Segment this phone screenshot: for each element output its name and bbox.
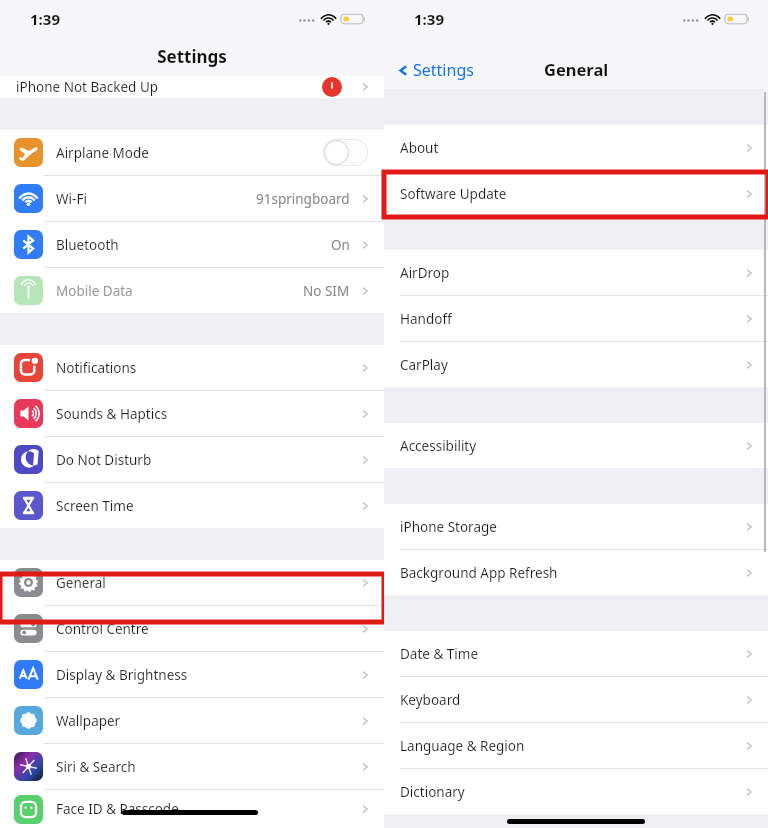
staticText: Wi-Fi (56, 190, 87, 208)
staticText: Siri & Search (56, 758, 136, 776)
staticText: Settings (157, 45, 227, 68)
staticText: AirDrop (400, 264, 450, 282)
staticText: Sounds & Haptics (56, 405, 168, 423)
button[interactable]: iPhone Storage (384, 504, 768, 549)
button[interactable]: Siri & Search (0, 744, 384, 789)
staticText: Face ID & Passcode (56, 800, 179, 818)
button[interactable]: Display & Brightness (0, 652, 384, 697)
staticText: Handoff (400, 310, 452, 328)
button[interactable]: CarPlay (384, 342, 768, 387)
staticText: Software Update (400, 185, 507, 203)
staticText: Mobile Data (56, 282, 133, 300)
staticText: About (400, 139, 439, 157)
staticText: Display & Brightness (56, 666, 188, 684)
button[interactable]: Airplane Mode (0, 130, 384, 175)
button[interactable]: Notifications (0, 345, 384, 390)
staticText: Keyboard (400, 691, 461, 709)
button[interactable]: Language & Region (384, 723, 768, 768)
button[interactable]: Background App Refresh (384, 550, 768, 595)
staticText: Bluetooth (56, 236, 119, 254)
button[interactable]: AirDrop (384, 250, 768, 295)
button[interactable]: About (384, 125, 768, 170)
button[interactable]: Wi-Fi (0, 176, 384, 221)
staticText: Background App Refresh (400, 564, 558, 582)
button[interactable]: Date & Time (384, 631, 768, 676)
staticText: Screen Time (56, 497, 134, 515)
staticText: Control Centre (56, 620, 149, 638)
button[interactable]: Bluetooth (0, 222, 384, 267)
staticText: 1:39 (414, 9, 444, 29)
staticText: Settings (413, 59, 474, 81)
staticText: iPhone Not Backed Up (16, 78, 159, 96)
staticText: Accessibility (400, 437, 477, 455)
staticText: Wallpaper (56, 712, 121, 730)
button[interactable]: Face ID & Passcode (0, 790, 384, 828)
staticText: Do Not Disturb (56, 451, 152, 469)
button[interactable]: Control Centre (0, 606, 384, 651)
button[interactable] (323, 139, 368, 166)
button[interactable]: Sounds & Haptics (0, 391, 384, 436)
other: Back (396, 63, 411, 78)
button[interactable]: Accessibility (384, 423, 768, 468)
button[interactable]: Mobile Data (0, 268, 384, 313)
staticText: On (331, 236, 350, 254)
staticText: iPhone Storage (400, 518, 497, 536)
staticText: Notifications (56, 359, 137, 377)
staticText: 1:39 (30, 9, 60, 29)
button[interactable]: Software Update (384, 171, 768, 216)
button[interactable]: Back (396, 59, 474, 81)
staticText: Date & Time (400, 645, 479, 663)
staticText: General (544, 58, 609, 80)
button[interactable]: Handoff (384, 296, 768, 341)
staticText: Language & Region (400, 737, 525, 755)
button[interactable]: Screen Time (0, 483, 384, 528)
staticText: CarPlay (400, 356, 448, 374)
button[interactable]: Dictionary (384, 769, 768, 814)
staticText: Dictionary (400, 783, 465, 801)
staticText: No SIM (303, 282, 350, 300)
staticText: Airplane Mode (56, 144, 149, 162)
staticText: 91springboard (256, 190, 350, 208)
button[interactable]: iPhone Not Backed Up (0, 76, 384, 98)
button[interactable]: Keyboard (384, 677, 768, 722)
button[interactable]: General (0, 560, 384, 605)
button[interactable]: Do Not Disturb (0, 437, 384, 482)
staticText: General (56, 574, 106, 592)
button[interactable]: Wallpaper (0, 698, 384, 743)
